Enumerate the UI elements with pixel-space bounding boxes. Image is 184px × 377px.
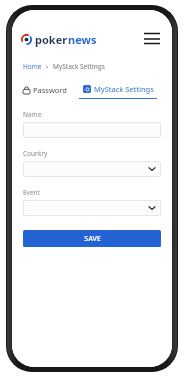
- staticText: MyStack Settings: [94, 84, 154, 94]
- button[interactable]: Open dropdown: [23, 200, 161, 216]
- staticText: ›: [46, 62, 49, 71]
- button[interactable]: Password: [23, 80, 67, 99]
- staticText: Name: [23, 110, 42, 119]
- button[interactable]: Open dropdown: [23, 161, 161, 177]
- staticText: Country: [23, 149, 48, 158]
- staticText: news: [68, 32, 97, 47]
- button[interactable]: Home: [23, 62, 42, 71]
- button[interactable]: SAVE: [23, 230, 161, 247]
- staticText: Password: [33, 85, 67, 95]
- button[interactable]: [23, 122, 161, 138]
- button[interactable]: Menu: [141, 28, 163, 50]
- staticText: SAVE: [84, 234, 101, 244]
- staticText: MyStack Settings: [53, 62, 105, 71]
- staticText: Event: [23, 188, 40, 197]
- button[interactable]: PokerNews home: [21, 32, 97, 47]
- staticText: poker: [35, 32, 68, 47]
- button[interactable]: MyStack Settings: [79, 80, 157, 99]
